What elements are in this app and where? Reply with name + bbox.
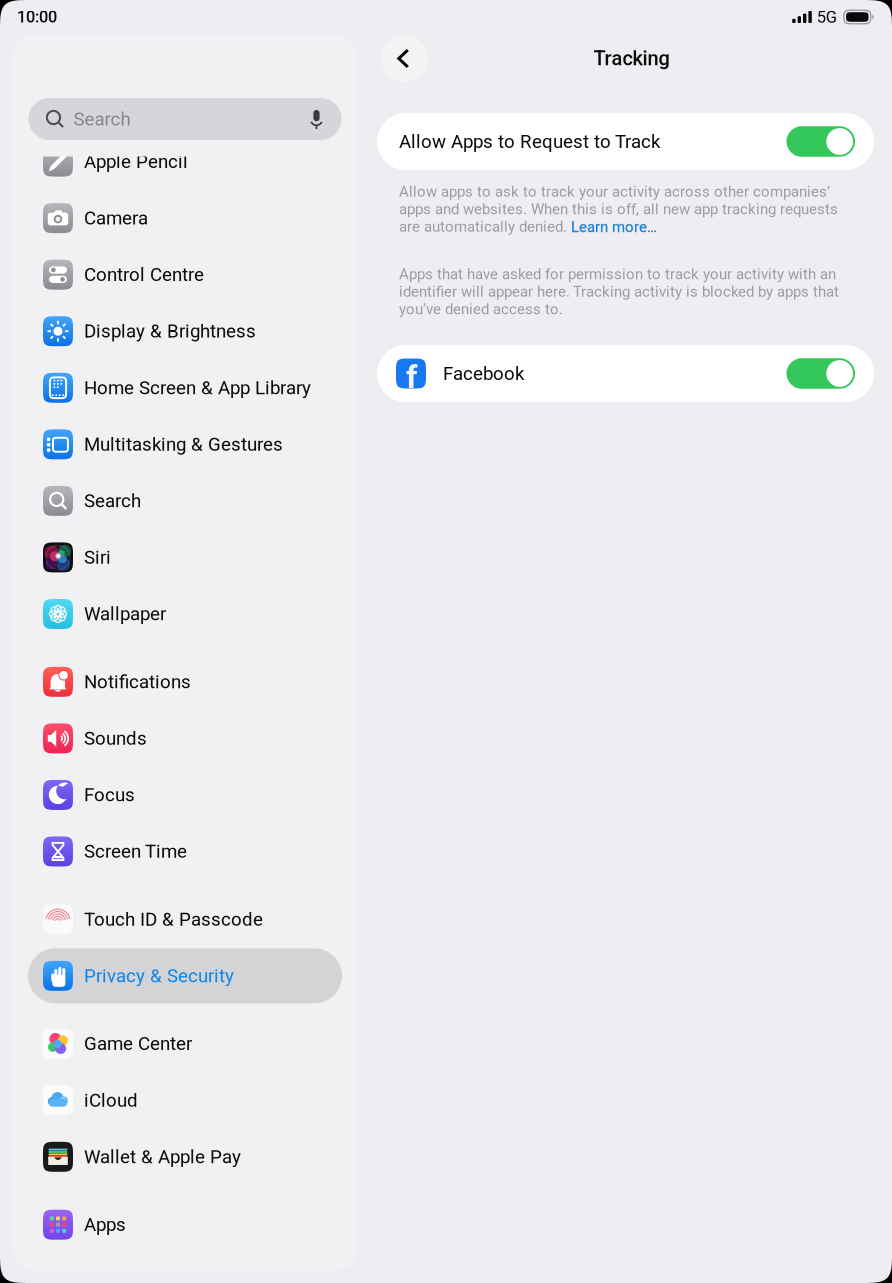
button[interactable]: Notifications xyxy=(28,654,342,709)
staticText: Control Centre xyxy=(84,264,204,286)
button[interactable]: Home Screen & App Library xyxy=(28,360,342,415)
button[interactable]: Multitasking & Gestures xyxy=(28,417,342,472)
staticText: Screen Time xyxy=(84,840,187,862)
button[interactable]: Back xyxy=(381,35,428,82)
staticText: 10:00 xyxy=(17,7,57,27)
staticText: Touch ID & Passcode xyxy=(84,908,263,930)
button[interactable]: Wallpaper xyxy=(28,586,342,641)
button[interactable]: Privacy & Security xyxy=(28,948,342,1003)
staticText: Search xyxy=(73,108,130,130)
staticText: Apps that have asked for permission to t… xyxy=(399,265,839,318)
button[interactable]: Display & Brightness xyxy=(28,304,342,359)
staticText: Search xyxy=(84,490,141,512)
staticText: Display & Brightness xyxy=(84,320,256,342)
button[interactable]: Camera xyxy=(28,191,342,246)
button[interactable]: Game Center xyxy=(28,1016,342,1071)
staticText: Wallet & Apple Pay xyxy=(84,1146,241,1168)
button[interactable]: Control Centre xyxy=(28,247,342,302)
button[interactable]: Wallet & Apple Pay xyxy=(28,1129,342,1184)
staticText: iCloud xyxy=(84,1089,138,1111)
staticText: Allow apps to ask to track your activity… xyxy=(399,183,838,235)
staticText: Facebook xyxy=(443,363,524,384)
button[interactable]: Sounds xyxy=(28,711,342,766)
staticText: Focus xyxy=(84,784,135,806)
staticText: Home Screen & App Library xyxy=(84,377,311,399)
staticText: Apps xyxy=(84,1214,126,1236)
staticText: Sounds xyxy=(84,727,147,749)
staticText: f xyxy=(406,358,417,396)
staticText: 5G xyxy=(817,7,837,27)
staticText: Apple Pencil xyxy=(84,151,188,172)
staticText: Notifications xyxy=(84,671,191,693)
staticText: Privacy & Security xyxy=(84,965,234,987)
button[interactable]: Learn more… xyxy=(571,218,657,236)
staticText: Siri xyxy=(84,546,111,568)
staticText: Allow Apps to Request to Track xyxy=(399,131,660,152)
button[interactable]: Touch ID & Passcode xyxy=(28,892,342,947)
button[interactable]: f xyxy=(377,345,874,402)
button[interactable]: Siri xyxy=(28,530,342,585)
staticText: Multitasking & Gestures xyxy=(84,433,283,455)
staticText: Game Center xyxy=(84,1033,192,1055)
staticText: Camera xyxy=(84,207,148,229)
staticText: Learn more… xyxy=(571,218,657,236)
button[interactable]: Focus xyxy=(28,767,342,822)
button[interactable]: Search xyxy=(28,473,342,528)
button[interactable]: Allow Apps to Request to Track xyxy=(377,113,874,170)
staticText: Wallpaper xyxy=(84,603,166,625)
staticText: Tracking xyxy=(593,47,669,70)
button[interactable]: Apple Pencil xyxy=(28,134,342,189)
button[interactable]: Apps xyxy=(28,1197,342,1252)
button[interactable]: Screen Time xyxy=(28,824,342,879)
button[interactable]: iCloud xyxy=(28,1073,342,1128)
